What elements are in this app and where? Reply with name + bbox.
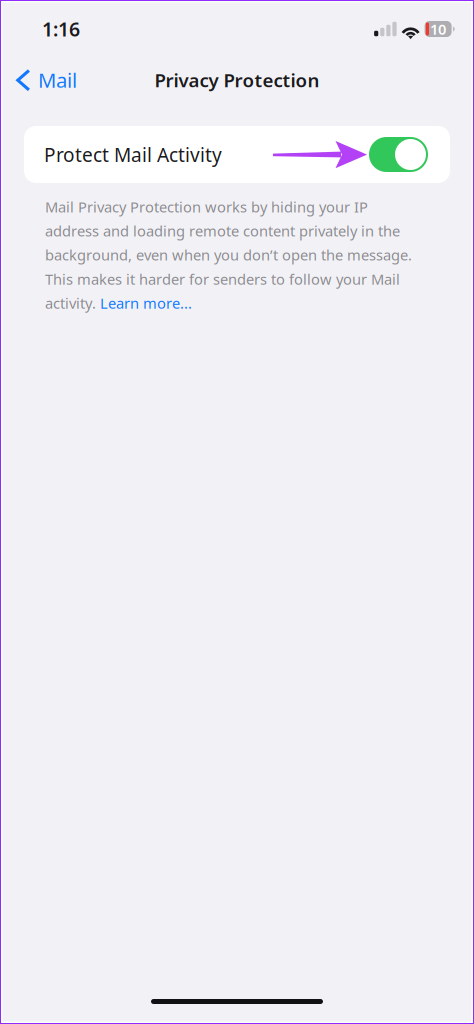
- button[interactable]: Protect Mail Activity: [369, 137, 428, 172]
- staticText: Privacy Protection: [154, 67, 319, 93]
- staticText: 1:16: [42, 16, 80, 42]
- staticText: Protect Mail Activity: [44, 141, 222, 167]
- staticText: 10: [430, 19, 446, 39]
- staticText: Mail: [38, 66, 77, 94]
- button[interactable]: Mail: [0, 58, 89, 102]
- staticText: Mail Privacy Protection works by hiding …: [45, 197, 412, 313]
